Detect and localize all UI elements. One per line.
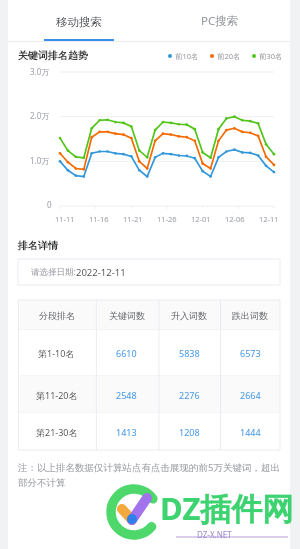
staticText: 11-21	[123, 214, 143, 224]
staticText: 分段排名	[39, 310, 75, 321]
button[interactable]: 第11-20名	[18, 376, 280, 413]
staticText: 1444	[240, 426, 261, 438]
button[interactable]: 移动搜索	[8, 0, 149, 41]
staticText: 前10名	[175, 51, 199, 61]
staticText: 跌出词数	[232, 310, 268, 321]
staticText: 12-06	[225, 214, 245, 224]
staticText: 前20名	[217, 51, 241, 61]
staticText: 1413	[116, 426, 137, 438]
button[interactable]: 前20名	[210, 51, 241, 61]
staticText: 11-11	[55, 214, 75, 224]
staticText: 第11-20名	[36, 389, 78, 401]
staticText: PC搜索	[201, 13, 239, 29]
staticText: 第1-10名	[38, 347, 75, 359]
staticText: 12-11	[259, 214, 279, 224]
staticText: 11-16	[89, 214, 109, 224]
button[interactable]: 请选择日期:	[18, 259, 280, 285]
button[interactable]: PC搜索	[149, 0, 290, 41]
button[interactable]: 第1-10名	[18, 330, 280, 376]
staticText: 2.0万	[30, 110, 50, 121]
button[interactable]: 前10名	[168, 51, 199, 61]
staticText: 升入词数	[171, 310, 207, 321]
staticText: 11-26	[157, 214, 177, 224]
staticText: 2022-12-11	[76, 266, 126, 279]
staticText: DZ-X.NET	[197, 529, 232, 540]
staticText: 排名详情	[18, 239, 58, 252]
staticText: 前30名	[259, 51, 283, 61]
staticText: 5838	[179, 347, 200, 359]
staticText: 注：以上排名数据仅计算站点有点击展现的前5万关键词，超出部分不计算	[18, 461, 280, 489]
staticText: 6573	[240, 347, 261, 359]
button[interactable]: 前30名	[252, 51, 283, 61]
staticText: 1208	[179, 426, 200, 438]
staticText: 2276	[179, 389, 200, 401]
staticText: 2548	[116, 389, 137, 401]
staticText: 移动搜索	[56, 15, 102, 29]
staticText: 2664	[240, 389, 261, 401]
staticText: 第21-30名	[36, 426, 78, 438]
button[interactable]: 第21-30名	[18, 413, 280, 450]
staticText: 1.0万	[30, 155, 50, 166]
staticText: 关键词数	[109, 310, 145, 321]
staticText: 3.0万	[30, 66, 50, 77]
staticText: 12-01	[191, 214, 211, 224]
staticText: 请选择日期:	[31, 266, 76, 278]
staticText: 6610	[116, 347, 137, 359]
staticText: 关键词排名趋势	[18, 49, 88, 62]
staticText: 0	[47, 199, 52, 210]
staticText: DZ插件网	[160, 487, 294, 529]
